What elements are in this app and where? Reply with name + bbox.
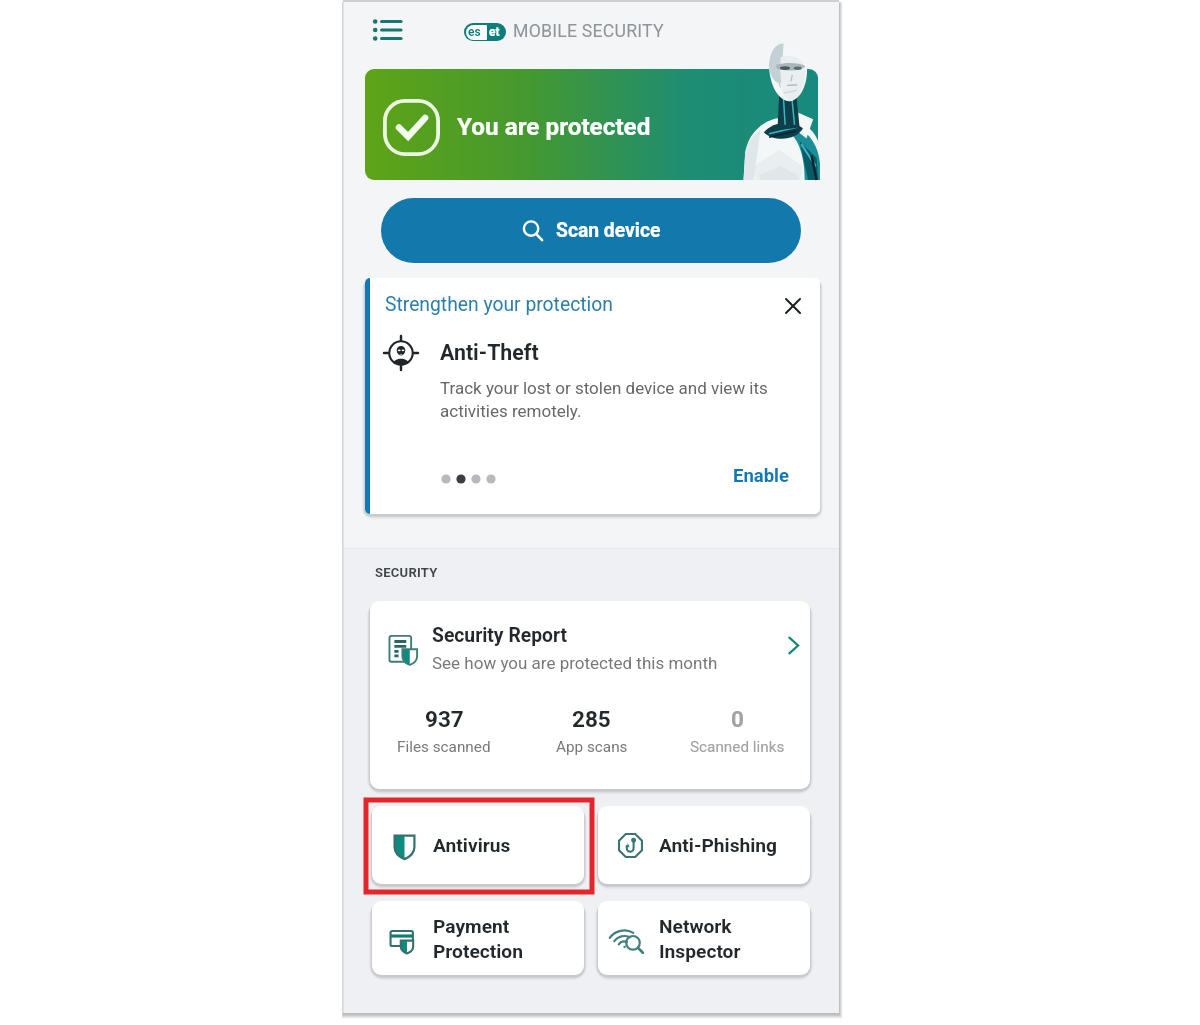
staticText: Enable: [733, 465, 789, 487]
button[interactable]: Payment Protection: [372, 901, 584, 975]
button[interactable]: Close: [776, 289, 810, 323]
staticText: 937: [425, 706, 464, 732]
staticText: MOBILE SECURITY: [513, 21, 664, 42]
staticText: es: [468, 25, 481, 39]
staticText: Antivirus: [433, 834, 511, 857]
staticText: Files scanned: [397, 738, 491, 756]
staticText: You are protected: [457, 112, 651, 140]
staticText: App scans: [556, 738, 628, 756]
staticText: Network Inspector: [659, 915, 741, 962]
button[interactable]: Scan device: [381, 198, 801, 263]
button[interactable]: Security Report: [370, 601, 810, 789]
button[interactable]: Menu: [372, 15, 406, 49]
staticText: Strengthen your protection: [385, 293, 613, 316]
staticText: Payment Protection: [433, 915, 523, 962]
staticText: 285: [572, 706, 611, 732]
staticText: See how you are protected this month: [432, 653, 718, 673]
staticText: Anti-Phishing: [659, 834, 778, 857]
staticText: SECURITY: [375, 565, 438, 580]
staticText: Scanned links: [690, 738, 785, 756]
staticText: Track your lost or stolen device and vie…: [440, 378, 768, 421]
button[interactable]: Enable: [720, 460, 802, 492]
staticText: et: [489, 25, 500, 39]
staticText: 0: [731, 706, 744, 732]
button[interactable]: Antivirus: [372, 806, 584, 884]
staticText: Scan device: [556, 219, 661, 242]
staticText: Anti-Theft: [440, 340, 539, 365]
button[interactable]: You are protected: [365, 69, 818, 180]
button[interactable]: Anti-Phishing: [598, 806, 810, 884]
staticText: Security Report: [432, 624, 567, 647]
button[interactable]: Network Inspector: [598, 901, 810, 975]
